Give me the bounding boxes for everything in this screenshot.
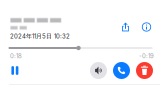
- button[interactable]: Speaker: [90, 62, 107, 79]
- button[interactable]: Details: [139, 19, 154, 34]
- button[interactable]: Delete: [136, 62, 153, 79]
- staticText: 0:18: [10, 52, 22, 60]
- button[interactable]: Pause: [6, 62, 23, 79]
- button[interactable]: Share: [118, 19, 133, 34]
- button[interactable]: Call back: [113, 62, 130, 79]
- staticText: 2024年11月5日 10:32: [10, 32, 70, 40]
- staticText: -0:19: [139, 52, 154, 60]
